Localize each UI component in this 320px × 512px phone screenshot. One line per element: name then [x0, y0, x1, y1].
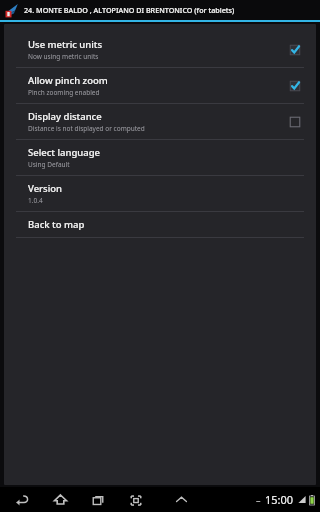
staticText: Display distance — [28, 110, 102, 123]
button[interactable]: Version — [4, 176, 316, 211]
staticText: Allow pinch zoom — [28, 74, 108, 87]
button[interactable]: Recent apps — [84, 487, 112, 512]
button[interactable]: Expand notifications — [168, 487, 194, 512]
button[interactable]: 24. MONTE BALDO , ALTOPIANO DI BRENTONIC… — [0, 0, 320, 20]
staticText: Use metric units — [28, 38, 103, 51]
staticText: Version — [28, 182, 63, 195]
staticText: Distance is not displayed or computed — [28, 124, 145, 133]
staticText: Back to map — [28, 218, 85, 231]
button[interactable]: Allow pinch zoom — [4, 68, 316, 103]
staticText: Pinch zooming enabled — [28, 88, 100, 97]
staticText: Using Default — [28, 160, 70, 169]
button[interactable]: Screenshot — [122, 487, 150, 512]
button[interactable]: Select language — [4, 140, 316, 175]
staticText: 1.0.4 — [28, 196, 43, 205]
staticText: Now using metric units — [28, 52, 99, 61]
staticText: Select language — [28, 146, 101, 159]
button[interactable]: Display distance — [4, 104, 316, 139]
staticText: 24. MONTE BALDO , ALTOPIANO DI BRENTONIC… — [24, 5, 235, 15]
button[interactable]: Home — [46, 487, 74, 512]
button[interactable]: Use metric units — [4, 32, 316, 67]
button[interactable]: Back to map — [4, 212, 316, 237]
staticText: 15:00 — [265, 492, 294, 507]
staticText: – — [256, 494, 261, 506]
button[interactable]: Back — [8, 487, 36, 512]
